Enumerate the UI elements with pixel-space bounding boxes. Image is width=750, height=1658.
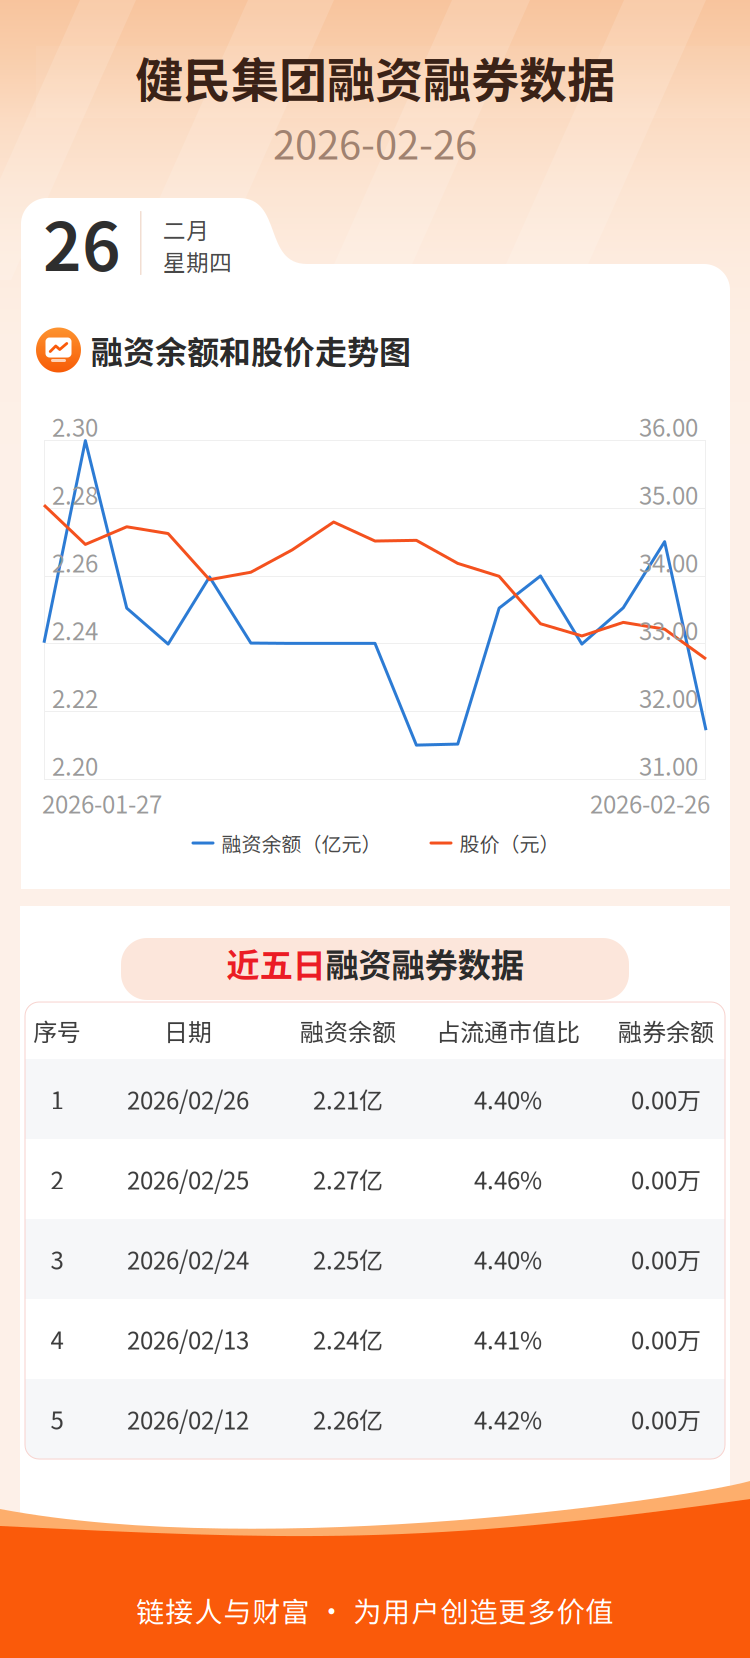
staticText: 二月 <box>163 213 209 245</box>
staticText: 融资余额（亿元） <box>221 828 381 857</box>
staticText: 2026-01-27 <box>42 786 162 820</box>
staticText: 26 <box>43 194 121 290</box>
staticText: 3 <box>50 1242 63 1276</box>
staticText: 融券余额 <box>618 1013 714 1048</box>
staticText: 2026/02/24 <box>127 1242 249 1276</box>
staticText: 36.00 <box>639 409 698 444</box>
staticText: 4.40% <box>474 1082 542 1116</box>
staticText: 2026/02/26 <box>127 1082 249 1116</box>
staticText: 32.00 <box>639 680 698 715</box>
staticText: 日期 <box>164 1013 212 1048</box>
staticText: 4.41% <box>474 1322 542 1356</box>
staticText: 0.00万 <box>631 1322 701 1356</box>
staticText: 35.00 <box>639 477 698 512</box>
staticText: 0.00万 <box>631 1082 701 1116</box>
staticText: 2026/02/13 <box>127 1322 249 1356</box>
staticText: 2026/02/12 <box>127 1402 249 1436</box>
staticText: 1 <box>50 1082 63 1116</box>
staticText: 33.00 <box>639 612 698 647</box>
staticText: 4.42% <box>474 1402 542 1436</box>
staticText: 2.27亿 <box>313 1162 383 1196</box>
staticText: 0.00万 <box>631 1162 701 1196</box>
staticText: 34.00 <box>639 545 698 579</box>
staticText: 31.00 <box>639 748 698 783</box>
staticText: 2.26亿 <box>313 1402 383 1436</box>
staticText: 0.00万 <box>631 1242 701 1276</box>
staticText: 4 <box>50 1322 63 1356</box>
staticText: 2.20 <box>52 748 98 783</box>
staticText: 2.21亿 <box>313 1082 383 1116</box>
staticText: 2026-02-26 <box>590 786 710 820</box>
staticText: 近五日 <box>226 939 325 987</box>
staticText: 2 <box>50 1162 63 1196</box>
staticText: 链接人与财富 · 为用户创造更多价值 <box>136 1590 613 1630</box>
staticText: 0.00万 <box>631 1402 701 1436</box>
staticText: 融资余额和股价走势图 <box>91 327 411 373</box>
staticText: 星期四 <box>163 245 232 277</box>
staticText: 2.26 <box>52 545 98 579</box>
staticText: 2026/02/25 <box>127 1162 249 1196</box>
staticText: 4.46% <box>474 1162 542 1196</box>
staticText: 融资余额 <box>300 1013 396 1048</box>
staticText: 股价（元） <box>459 828 559 857</box>
staticText: 2.25亿 <box>313 1242 383 1276</box>
staticText: 2.24 <box>52 612 98 647</box>
staticText: 健民集团融资融券数据 <box>135 42 615 112</box>
staticText: 2.22 <box>52 680 98 715</box>
staticText: 2026-02-26 <box>273 113 477 171</box>
staticText: 5 <box>50 1402 63 1436</box>
staticText: 融资融券数据 <box>325 939 523 987</box>
staticText: 序号 <box>33 1013 81 1048</box>
staticText: 2.24亿 <box>313 1322 383 1356</box>
staticText: 2.30 <box>52 409 98 444</box>
staticText: 占流通市值比 <box>436 1013 580 1048</box>
staticText: 4.40% <box>474 1242 542 1276</box>
staticText: 2.28 <box>52 477 98 512</box>
